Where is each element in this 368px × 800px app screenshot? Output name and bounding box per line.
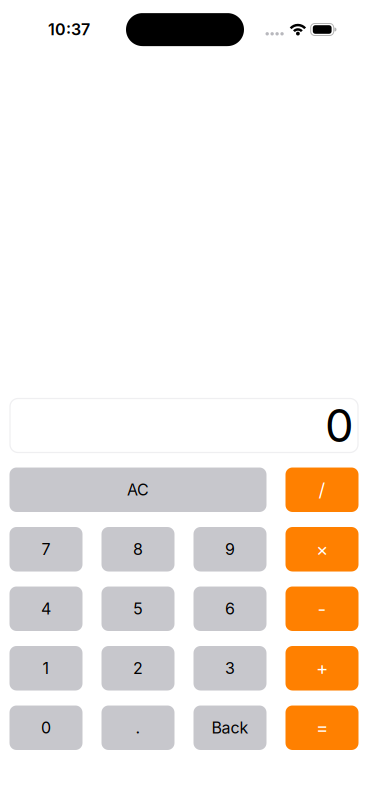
button[interactable]: Divide xyxy=(285,467,358,512)
staticText: 7 xyxy=(41,540,50,559)
button[interactable]: All clear xyxy=(9,467,266,512)
button[interactable]: 5 xyxy=(101,586,174,631)
staticText: 10:37 xyxy=(48,20,90,39)
staticText: 4 xyxy=(41,599,51,618)
staticText: 1 xyxy=(42,659,49,678)
button[interactable]: 2 xyxy=(101,646,174,690)
button[interactable]: Back xyxy=(193,705,266,750)
staticText: 0 xyxy=(325,398,354,453)
button[interactable]: 6 xyxy=(193,586,266,631)
staticText: 9 xyxy=(225,540,235,559)
staticText: 3 xyxy=(225,659,235,678)
staticText: / xyxy=(318,478,325,501)
staticText: - xyxy=(317,597,326,620)
button[interactable]: Minus xyxy=(285,586,358,631)
staticText: + xyxy=(316,657,328,680)
button[interactable]: Multiply xyxy=(285,527,358,571)
button[interactable]: 0 xyxy=(9,705,82,750)
staticText: 5 xyxy=(133,599,143,618)
staticText: 0 xyxy=(41,718,51,737)
staticText: . xyxy=(135,718,140,737)
staticText: × xyxy=(316,538,328,561)
button[interactable]: 4 xyxy=(9,586,82,631)
button[interactable]: 9 xyxy=(193,527,266,571)
staticText: Back xyxy=(211,718,248,737)
button[interactable]: Plus xyxy=(285,646,358,690)
staticText: 8 xyxy=(133,540,143,559)
button[interactable]: 7 xyxy=(9,527,82,571)
staticText: = xyxy=(316,716,328,739)
staticText: 6 xyxy=(225,599,235,618)
staticText: 2 xyxy=(133,659,143,678)
button[interactable]: Equals xyxy=(285,705,358,750)
button[interactable]: Decimal point xyxy=(101,705,174,750)
button[interactable]: 1 xyxy=(9,646,82,690)
button[interactable]: 3 xyxy=(193,646,266,690)
button[interactable]: 8 xyxy=(101,527,174,571)
staticText: AC xyxy=(127,480,149,499)
